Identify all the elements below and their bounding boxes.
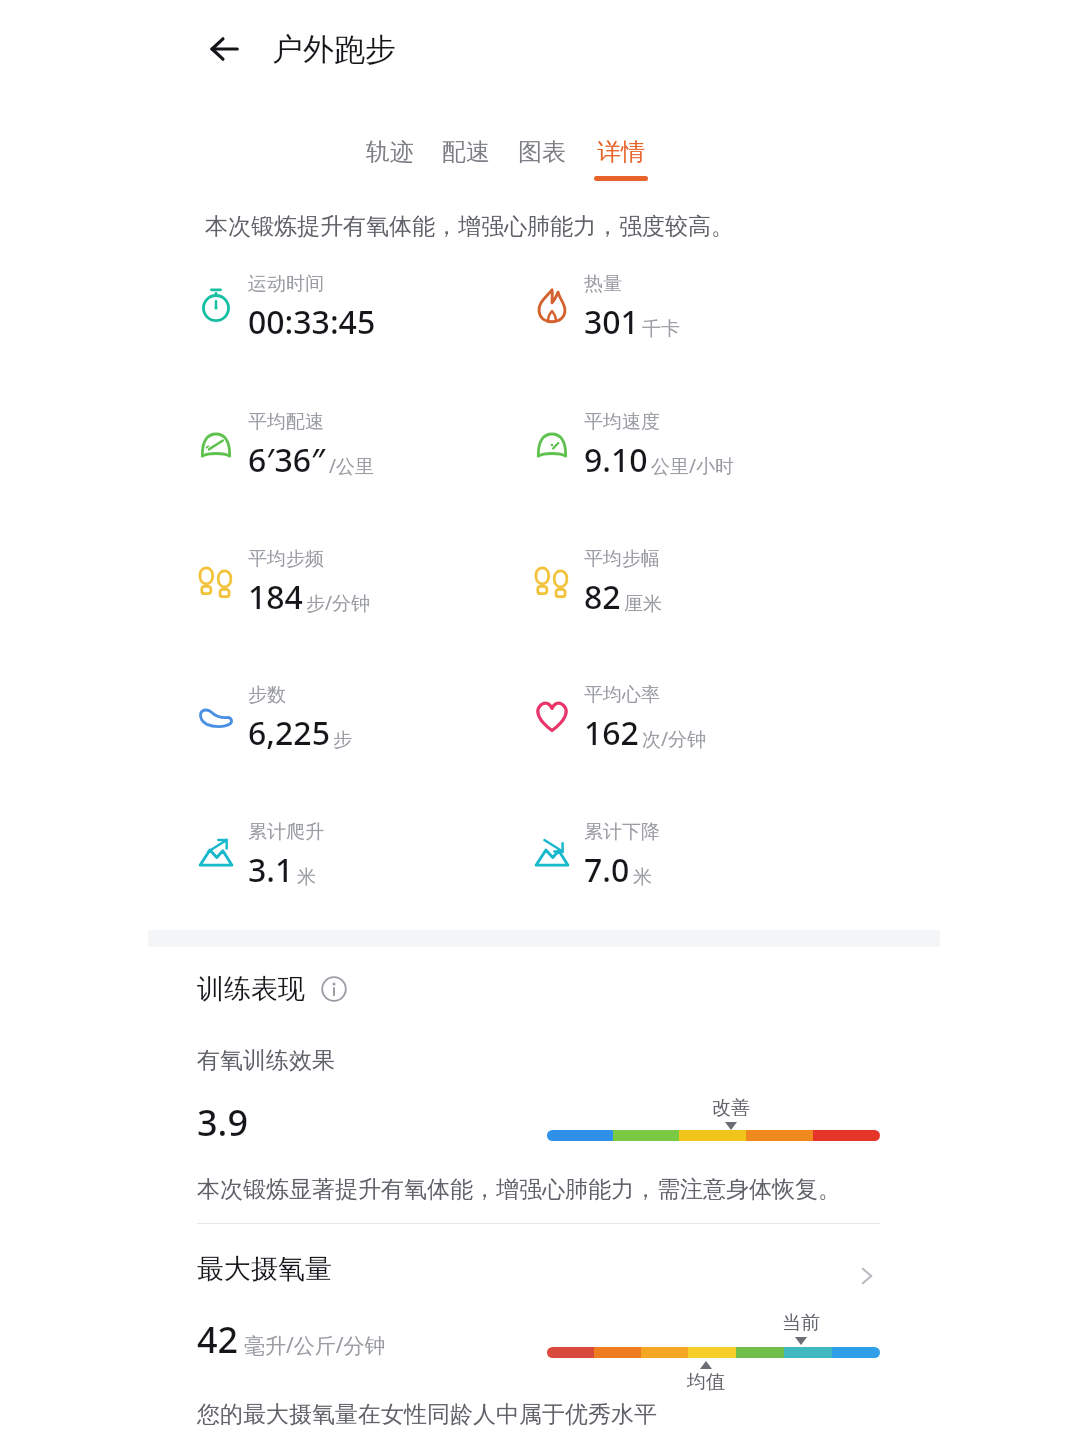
staticText: 平均心率 xyxy=(584,683,660,707)
staticText: 当前 xyxy=(782,1311,820,1335)
staticText: 162 xyxy=(584,711,639,755)
staticText: 6′36″ xyxy=(248,438,326,482)
staticText: 有氧训练效果 xyxy=(197,1046,335,1075)
staticText: 3.9 xyxy=(197,1098,248,1147)
staticText: 平均速度 xyxy=(584,410,660,434)
button[interactable]: 图表 xyxy=(518,137,566,176)
button[interactable]: 详情 xyxy=(594,137,648,181)
staticText: 详情 xyxy=(597,137,645,167)
button[interactable]: 热量 xyxy=(533,272,680,344)
button[interactable]: 运动时间 xyxy=(197,272,376,344)
staticText: 累计下降 xyxy=(584,820,660,844)
staticText: 9.10 xyxy=(584,438,648,482)
staticText: 本次锻炼显著提升有氧体能，增强心肺能力，需注意身体恢复。 xyxy=(197,1175,841,1204)
staticText: 步数 xyxy=(248,683,286,707)
other: 说明 xyxy=(319,974,349,1004)
button[interactable]: 平均配速 xyxy=(197,410,375,482)
staticText: 步/分钟 xyxy=(306,590,371,616)
staticText: 累计爬升 xyxy=(248,820,324,844)
staticText: 42 xyxy=(197,1315,239,1364)
staticText: 米 xyxy=(633,865,652,889)
button[interactable]: 轨迹 xyxy=(366,137,414,176)
button[interactable]: 配速 xyxy=(442,137,490,176)
staticText: 00:33:45 xyxy=(248,300,376,344)
staticText: 平均步幅 xyxy=(584,547,660,571)
staticText: 厘米 xyxy=(624,592,662,616)
staticText: 千卡 xyxy=(642,317,680,341)
staticText: 均值 xyxy=(687,1370,725,1394)
staticText: 82 xyxy=(584,575,621,619)
staticText: 轨迹 xyxy=(366,137,414,167)
button[interactable]: 平均步幅 xyxy=(533,547,662,619)
staticText: 热量 xyxy=(584,272,622,296)
staticText: 图表 xyxy=(518,137,566,167)
staticText: 3.1 xyxy=(248,848,294,892)
staticText: 6,225 xyxy=(248,711,330,755)
other: 查看详情 xyxy=(854,1263,880,1289)
staticText: 改善 xyxy=(712,1096,750,1120)
staticText: 7.0 xyxy=(584,848,630,892)
staticText: 本次锻炼提升有氧体能，增强心肺能力，强度较高。 xyxy=(205,212,734,241)
staticText: 米 xyxy=(297,865,316,889)
staticText: 最大摄氧量 xyxy=(197,1252,332,1286)
staticText: 训练表现 xyxy=(197,972,305,1006)
button[interactable]: 累计下降 xyxy=(533,820,660,892)
button[interactable]: 累计爬升 xyxy=(197,820,324,892)
staticText: 301 xyxy=(584,300,639,344)
staticText: 步 xyxy=(333,728,352,752)
button[interactable]: 返回 xyxy=(198,22,252,76)
button[interactable]: 平均心率 xyxy=(533,683,707,755)
staticText: 您的最大摄氧量在女性同龄人中属于优秀水平 xyxy=(197,1400,657,1429)
staticText: 运动时间 xyxy=(248,272,324,296)
button[interactable]: 步数 xyxy=(197,683,352,755)
staticText: 次/分钟 xyxy=(642,726,707,752)
button[interactable]: 平均速度 xyxy=(533,410,735,482)
staticText: 配速 xyxy=(442,137,490,167)
button[interactable]: 平均步频 xyxy=(197,547,371,619)
button[interactable]: 训练表现 xyxy=(197,972,349,1006)
staticText: /公里 xyxy=(329,453,375,479)
staticText: 平均步频 xyxy=(248,547,324,571)
staticText: 毫升/公斤/分钟 xyxy=(244,1331,386,1360)
staticText: 公里/小时 xyxy=(651,453,735,479)
staticText: 户外跑步 xyxy=(272,30,396,69)
staticText: 184 xyxy=(248,575,303,619)
staticText: 平均配速 xyxy=(248,410,324,434)
button[interactable]: 最大摄氧量 xyxy=(197,1252,880,1300)
